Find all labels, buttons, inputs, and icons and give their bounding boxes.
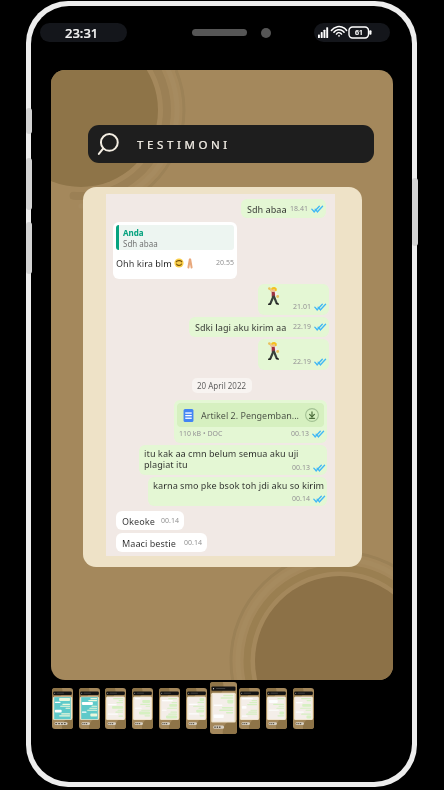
button[interactable]: Maaci bestie — [116, 533, 207, 552]
button[interactable]: Sdh abaa — [241, 199, 326, 218]
staticText: 23:31 — [65, 24, 99, 42]
staticText: Ohh kira blm — [116, 257, 172, 269]
button[interactable] — [79, 688, 100, 729]
staticText: Anda — [123, 227, 144, 238]
staticText: Artikel 2. Pengemban... — [201, 409, 299, 421]
staticText: 20.55 — [216, 258, 234, 268]
staticText: Sdki lagi aku kirim aa — [195, 321, 287, 333]
staticText: 00.14 — [292, 494, 310, 504]
button[interactable]: itu kak aa cmn belum semua aku uji — [139, 445, 327, 475]
staticText: 22.19 — [293, 322, 311, 332]
other: Search — [98, 134, 119, 155]
staticText: Maaci bestie — [122, 537, 176, 549]
button[interactable] — [186, 688, 207, 729]
other: Download — [305, 408, 319, 422]
button[interactable]: Artikel 2. Pengemban... — [174, 400, 327, 443]
staticText: 61 — [355, 28, 364, 38]
button[interactable]: Sdh abaa — [83, 187, 362, 567]
button[interactable]: Sdki lagi aku kirim aa — [189, 317, 329, 337]
staticText: itu kak aa cmn belum semua aku uji — [144, 447, 299, 459]
button[interactable]: Okeoke — [116, 511, 184, 530]
staticText: 21.01 — [293, 302, 311, 312]
staticText: 00.14 — [184, 538, 202, 548]
staticText: 18.41 — [290, 204, 308, 214]
staticText: 110 kB • DOC — [179, 429, 223, 439]
staticText: 00.13 — [291, 429, 309, 439]
button[interactable] — [293, 688, 314, 729]
staticText: Okeoke — [122, 515, 155, 527]
button[interactable] — [266, 688, 287, 729]
button[interactable] — [132, 688, 153, 729]
staticText: 22.19 — [293, 357, 311, 367]
staticText: 00.13 — [292, 463, 310, 473]
button[interactable]: karna smo pke bsok toh jdi aku so kirim — [148, 477, 327, 506]
staticText: karna smo pke bsok toh jdi aku so kirim — [153, 479, 325, 491]
button[interactable]: Search — [88, 125, 374, 163]
button[interactable]: Anda — [113, 222, 237, 279]
staticText: Sdh abaa — [247, 203, 287, 215]
staticText: 20 April 2022 — [197, 380, 247, 391]
button[interactable] — [52, 688, 73, 729]
button[interactable] — [159, 688, 180, 729]
button[interactable]: 22.19 — [258, 339, 329, 370]
button[interactable]: 21.01 — [258, 284, 329, 315]
staticText: plagiat itu — [144, 458, 188, 470]
button[interactable] — [105, 688, 126, 729]
staticText: TESTIMONI — [137, 137, 231, 153]
button[interactable] — [210, 682, 237, 734]
staticText: Sdh abaa — [123, 238, 158, 249]
button[interactable] — [239, 688, 260, 729]
staticText: 00.14 — [161, 516, 179, 526]
